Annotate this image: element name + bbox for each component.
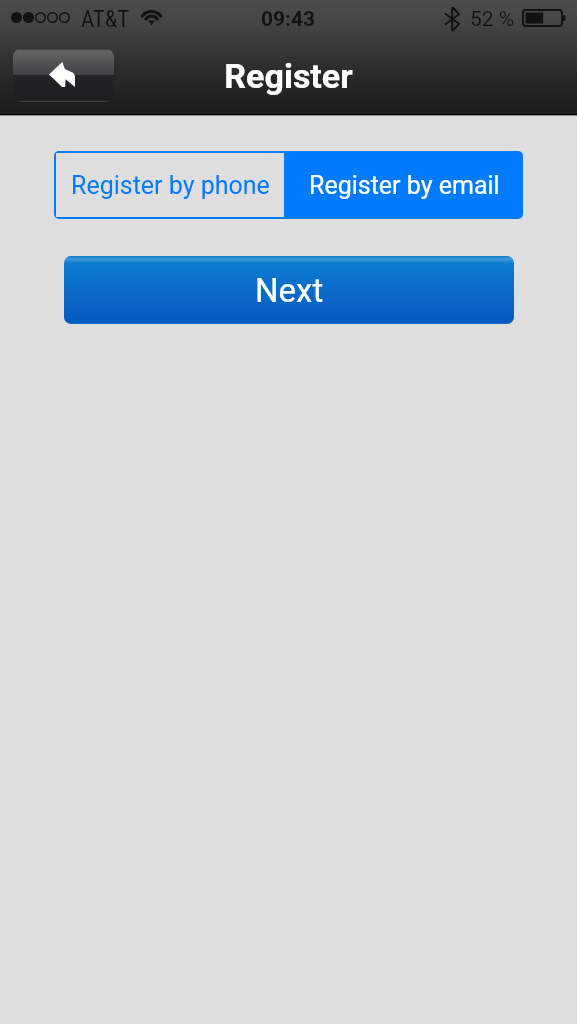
staticText: Register bbox=[0, 56, 577, 96]
button[interactable]: Back bbox=[13, 48, 114, 102]
staticText: 52 % bbox=[470, 7, 515, 32]
staticText: AT&T bbox=[81, 6, 130, 33]
button[interactable]: Register by email bbox=[286, 151, 523, 219]
button[interactable]: Register by phone bbox=[54, 151, 286, 219]
staticText: Register by phone bbox=[71, 171, 270, 200]
staticText: Next bbox=[255, 271, 324, 310]
staticText: Register by email bbox=[309, 171, 500, 200]
staticText: 09:43 bbox=[261, 7, 316, 32]
button[interactable]: Next bbox=[64, 256, 514, 324]
